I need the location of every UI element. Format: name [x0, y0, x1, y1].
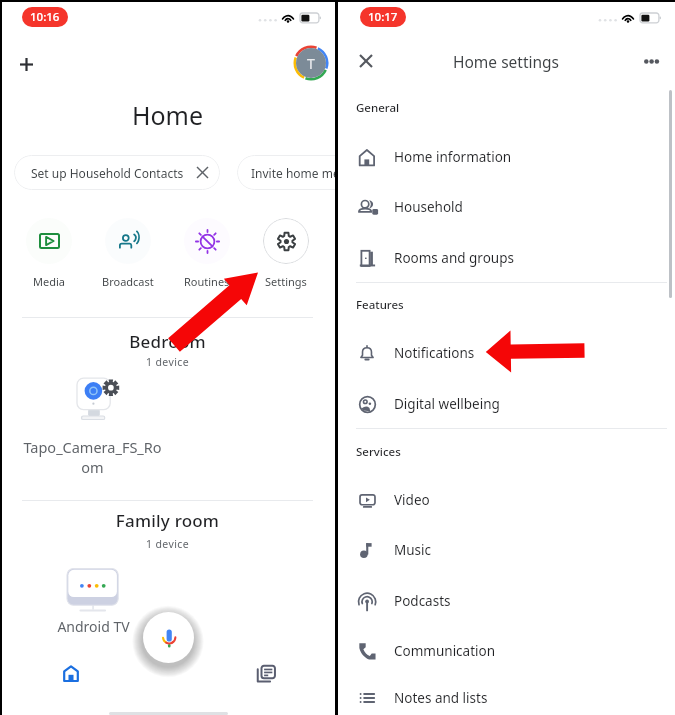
button[interactable]: Set up Household Contacts: [14, 155, 220, 190]
staticText: Household: [394, 198, 463, 216]
staticText: Rooms and groups: [394, 249, 514, 267]
staticText: Invite home members: [251, 165, 335, 181]
staticText: 10:16: [30, 9, 60, 25]
staticText: Broadcast: [102, 274, 154, 289]
button[interactable]: Invite home members: [237, 155, 335, 190]
button[interactable]: Feed: [246, 653, 287, 694]
button[interactable]: Rooms and groups: [338, 233, 675, 283]
button[interactable]: Broadcast: [88, 218, 167, 289]
button[interactable]: Household: [338, 182, 675, 232]
staticText: Home settings: [453, 51, 560, 72]
staticText: 1 device: [0, 537, 335, 551]
button[interactable]: Media: [10, 218, 88, 289]
staticText: 1 device: [0, 355, 335, 369]
staticText: Settings: [265, 274, 307, 289]
staticText: Communication: [394, 642, 496, 660]
staticText: Services: [356, 444, 401, 460]
staticText: Tapo_Camera_FS_Ro om: [19, 437, 166, 478]
button[interactable]: Music: [338, 525, 675, 575]
button[interactable]: Digital wellbeing: [338, 379, 675, 429]
button[interactable]: Google Assistant: [143, 612, 194, 663]
button[interactable]: Video: [338, 475, 675, 525]
staticText: Routines: [184, 274, 230, 289]
button[interactable]: Routines: [167, 218, 246, 289]
staticText: General: [356, 100, 400, 116]
staticText: 10:17: [368, 9, 398, 25]
staticText: Home: [0, 98, 335, 132]
button[interactable]: Account: [293, 45, 329, 81]
staticText: Music: [394, 541, 432, 559]
staticText: Set up Household Contacts: [31, 165, 184, 181]
button[interactable]: Close: [351, 46, 381, 76]
staticText: T: [307, 54, 315, 73]
button[interactable]: Communication: [338, 626, 675, 676]
button[interactable]: Notes and lists: [338, 673, 675, 715]
staticText: Podcasts: [394, 592, 451, 610]
staticText: Android TV: [20, 617, 167, 636]
button[interactable]: Podcasts: [338, 576, 675, 626]
button[interactable]: Settings: [246, 218, 325, 289]
staticText: Notes and lists: [394, 689, 488, 707]
staticText: Bedroom: [0, 330, 335, 353]
staticText: Digital wellbeing: [394, 395, 500, 413]
staticText: Home information: [394, 148, 512, 166]
staticText: Features: [356, 297, 404, 313]
staticText: Family room: [0, 509, 335, 532]
staticText: Notifications: [394, 344, 475, 362]
button[interactable]: Add: [10, 48, 42, 80]
button[interactable]: Home: [50, 653, 91, 694]
button[interactable]: Home information: [338, 132, 675, 182]
button[interactable]: Notifications: [338, 328, 675, 378]
staticText: Media: [33, 274, 65, 289]
button[interactable]: More options: [636, 46, 666, 76]
staticText: Video: [394, 491, 430, 509]
